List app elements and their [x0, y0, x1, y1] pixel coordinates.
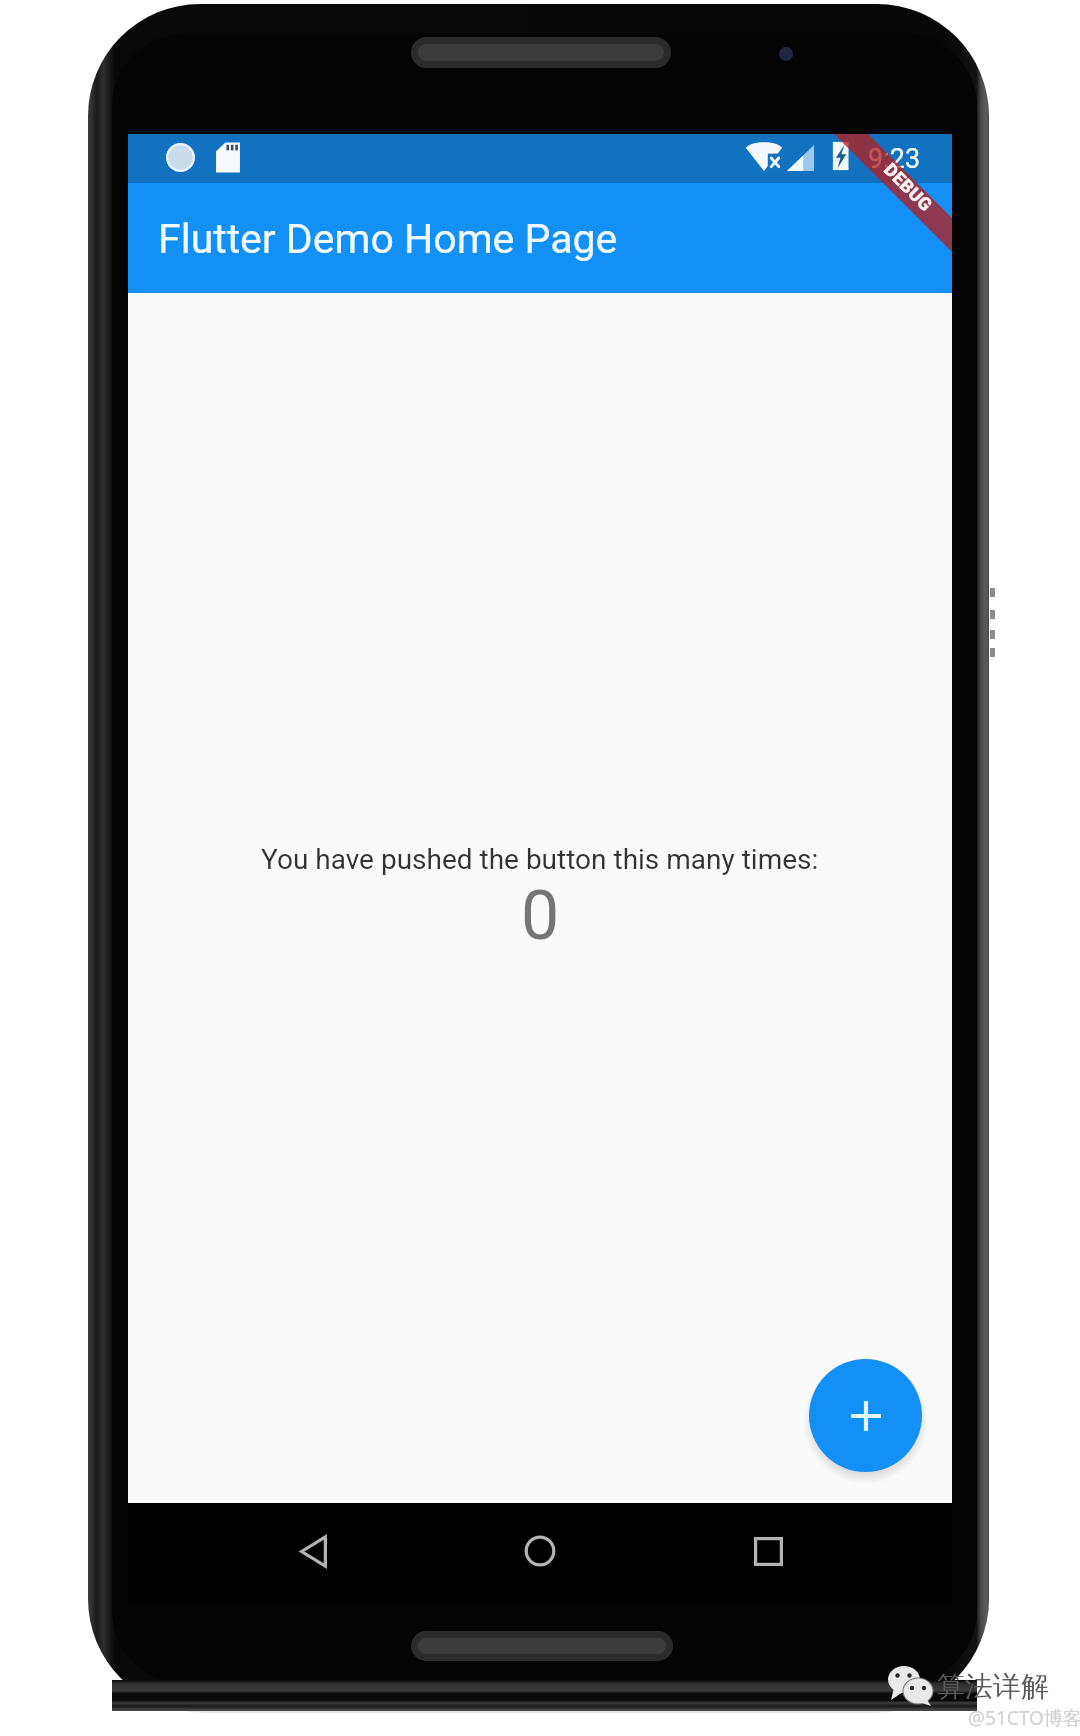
staticText: 算法详解 [937, 1669, 1049, 1704]
staticText: 9:23 [868, 143, 921, 175]
staticText: Flutter Demo Home Page [158, 215, 618, 263]
button[interactable]: Recent apps [733, 1516, 803, 1586]
staticText: 0 [521, 876, 560, 956]
staticText: You have pushed the button this many tim… [261, 843, 819, 876]
staticText: @51CTO博客 [968, 1705, 1080, 1731]
staticText: DEBUG [880, 159, 937, 216]
button[interactable]: Increment [809, 1359, 922, 1472]
button[interactable]: Home [505, 1516, 575, 1586]
button[interactable]: Back [278, 1516, 348, 1586]
